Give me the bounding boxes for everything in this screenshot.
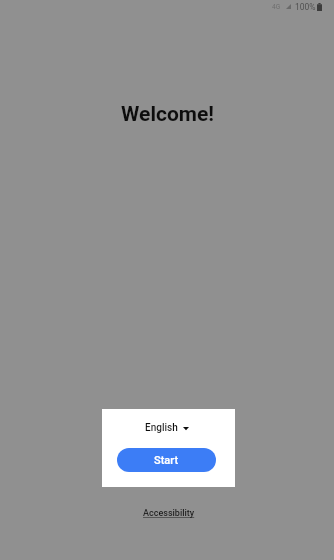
other: Battery full bbox=[317, 3, 322, 11]
staticText: 4G bbox=[272, 3, 281, 11]
staticText: 100% bbox=[295, 2, 316, 12]
staticText: Start bbox=[154, 454, 179, 467]
staticText: English bbox=[145, 422, 178, 434]
button[interactable]: Start bbox=[117, 448, 216, 472]
staticText: Accessibility bbox=[143, 508, 195, 519]
other: Mobile signal bbox=[286, 4, 291, 9]
button[interactable]: English bbox=[137, 415, 197, 441]
button[interactable]: Accessibility bbox=[133, 500, 205, 527]
staticText: Welcome! bbox=[121, 102, 215, 127]
